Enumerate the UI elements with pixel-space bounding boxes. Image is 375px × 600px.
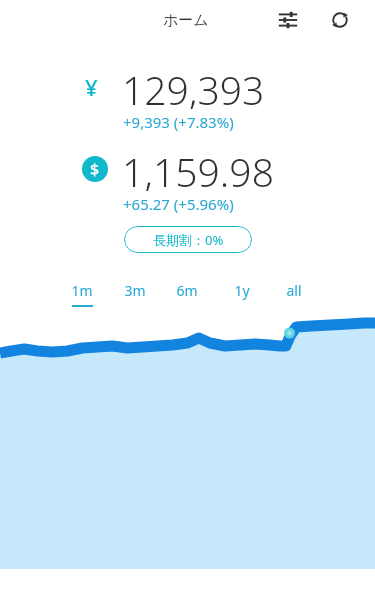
staticText: 1,159.98: [122, 145, 274, 191]
staticText: 3m: [124, 281, 146, 300]
button[interactable]: all: [274, 281, 314, 311]
staticText: 1y: [234, 281, 250, 300]
staticText: +9,393 (+7.83%): [123, 112, 234, 132]
staticText: 長期割：0%: [153, 231, 224, 249]
button[interactable]: 6m: [167, 281, 207, 311]
button[interactable]: Refresh: [324, 4, 356, 36]
staticText: +65.27 (+5.96%): [123, 194, 234, 214]
staticText: ¥: [85, 72, 98, 102]
staticText: ホーム: [163, 11, 209, 30]
staticText: 129,393: [122, 63, 265, 109]
button[interactable]: 1m: [62, 281, 102, 311]
button[interactable]: 長期割：0%: [124, 226, 252, 253]
button[interactable]: Settings: [272, 4, 304, 36]
staticText: all: [286, 281, 302, 300]
staticText: 6m: [176, 281, 198, 300]
staticText: $: [90, 158, 100, 180]
button[interactable]: 1y: [222, 281, 262, 311]
staticText: 1m: [71, 281, 93, 300]
button[interactable]: 3m: [115, 281, 155, 311]
